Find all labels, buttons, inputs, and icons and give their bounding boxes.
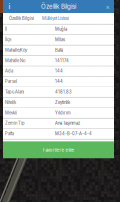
- staticText: Nitelik: [5, 100, 16, 105]
- button[interactable]: Kapat: [103, 0, 112, 13]
- button[interactable]: Bilgi: [5, 0, 14, 13]
- staticText: Zemin Tip: [5, 121, 25, 126]
- staticText: Yıldırım: [55, 110, 71, 115]
- staticText: Tapu Alanı: [5, 89, 24, 94]
- staticText: Milas: [55, 37, 65, 42]
- staticText: Özellik Bilgisi: [9, 16, 34, 21]
- staticText: Favorilere ekle: [42, 147, 74, 153]
- staticText: Mahalle/Köy: [5, 48, 27, 53]
- staticText: Ana Taşınmaz: [55, 121, 80, 126]
- staticText: 141174: [55, 58, 69, 63]
- staticText: Özellik Bilgisi: [41, 3, 76, 10]
- staticText: İlçe: [5, 37, 11, 42]
- staticText: Ada: [5, 69, 13, 74]
- staticText: Parsel: [5, 79, 17, 84]
- staticText: Mülkiyet Listesi: [42, 16, 69, 21]
- staticText: Mevkii: [5, 110, 17, 115]
- staticText: Zeytinlik: [55, 100, 70, 105]
- staticText: Muğla: [55, 27, 67, 32]
- staticText: Bafa: [55, 48, 63, 53]
- staticText: 144: [55, 79, 63, 84]
- button[interactable]: Mülkiyet Listesi: [38, 13, 73, 24]
- button[interactable]: Favorilere ekle: [3, 142, 114, 158]
- staticText: 4181.83: [55, 89, 72, 94]
- staticText: i: [8, 2, 10, 11]
- staticText: Pafta: [5, 131, 14, 136]
- staticText: ×: [105, 2, 109, 11]
- staticText: 144: [55, 69, 63, 74]
- button[interactable]: Özellik Bilgisi: [5, 13, 38, 24]
- staticText: M34-B-07-A-4-4: [55, 131, 92, 136]
- staticText: Mahalle No: [5, 58, 25, 63]
- staticText: İl: [5, 27, 7, 32]
